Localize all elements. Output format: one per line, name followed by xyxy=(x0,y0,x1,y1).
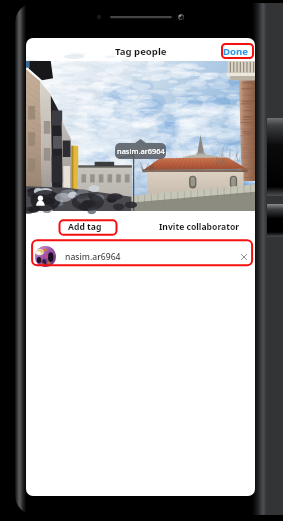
button[interactable]: Done xyxy=(223,45,248,58)
staticText: nasim.ar6964 xyxy=(65,251,121,263)
staticText: Tag people xyxy=(115,45,167,58)
staticText: Invite collaborator xyxy=(159,221,240,233)
button[interactable]: Invite collaborator xyxy=(144,211,255,243)
button[interactable]: Remove tag xyxy=(236,249,252,265)
button[interactable]: nasim.ar6964 xyxy=(26,243,255,270)
staticText: Done xyxy=(223,45,248,58)
button[interactable]: Add tag xyxy=(26,211,144,243)
staticText: Add tag xyxy=(68,221,102,233)
staticText: nasim.ar6964 xyxy=(117,146,165,156)
